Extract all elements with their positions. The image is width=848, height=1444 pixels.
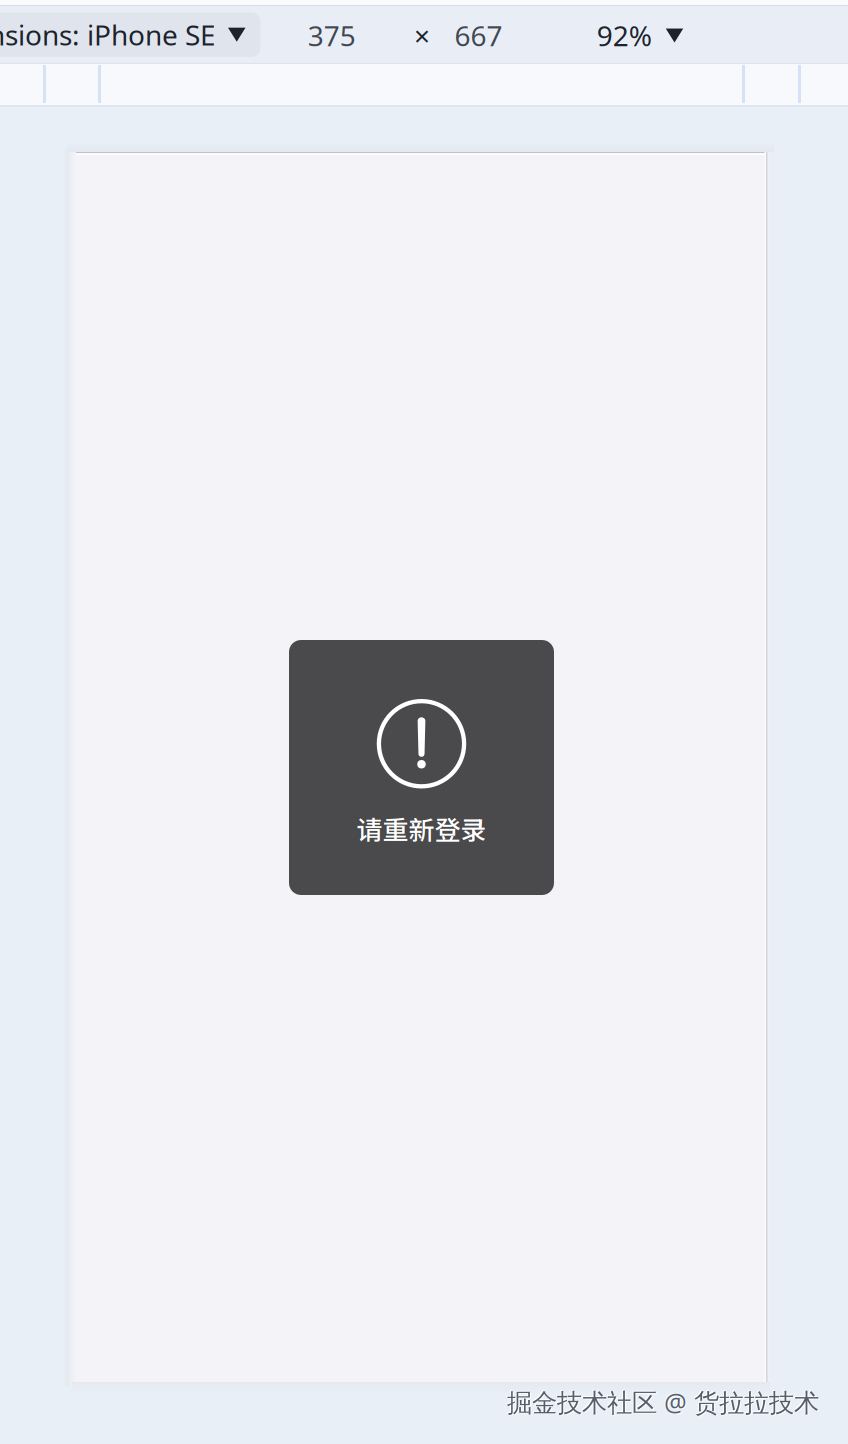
staticText: 请重新登录 bbox=[356, 809, 486, 847]
button[interactable]: 92% bbox=[597, 17, 683, 54]
staticText: × bbox=[414, 17, 430, 54]
staticText: 掘金技术社区 @ 货拉拉技术 bbox=[507, 1385, 819, 1419]
staticText: 掘金技术社区 @ 货拉拉技术 bbox=[506, 1384, 818, 1418]
staticText: nsions: iPhone SE bbox=[0, 16, 216, 53]
staticText: 375 bbox=[308, 17, 356, 54]
button[interactable]: nsions: iPhone SE bbox=[0, 12, 260, 57]
staticText: 92% bbox=[597, 17, 652, 54]
staticText: 667 bbox=[455, 17, 503, 54]
staticText: 掘金技术社区 @ 货拉拉技术 bbox=[508, 1386, 820, 1420]
